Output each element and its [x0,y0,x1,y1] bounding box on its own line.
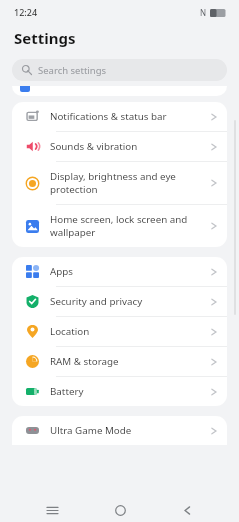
button[interactable]: Home screen, lock screen and wallpaper [12,205,227,247]
button[interactable]: Recent apps [37,498,67,522]
button[interactable]: Location [12,317,227,346]
button[interactable]: Ultra Game Mode [12,416,227,445]
button[interactable]: Home [105,498,135,522]
staticText: Search settings [38,64,107,77]
button[interactable]: Search settings [12,59,227,81]
staticText: Security and privacy [50,295,211,308]
staticText: N [200,7,207,18]
button[interactable]: Battery [12,377,227,406]
staticText: Notifications & status bar [50,110,211,123]
staticText: RAM & storage [50,355,211,368]
button[interactable]: Security and privacy [12,287,227,316]
staticText: 12:24 [14,6,38,18]
staticText: Sounds & vibration [50,140,211,153]
button[interactable]: Sounds & vibration [12,132,227,161]
button[interactable]: Display, brightness and eye protection [12,162,227,204]
staticText: Settings [14,28,76,48]
staticText: Home screen, lock screen and wallpaper [50,213,211,239]
staticText: Battery [50,385,211,398]
button[interactable]: Apps [12,257,227,286]
button[interactable]: RAM & storage [12,347,227,376]
button[interactable]: Notifications & status bar [12,102,227,131]
staticText: Apps [50,265,211,278]
staticText: Display, brightness and eye protection [50,170,211,196]
staticText: Location [50,325,211,338]
button[interactable]: Back [172,498,202,522]
staticText: Ultra Game Mode [50,424,211,437]
